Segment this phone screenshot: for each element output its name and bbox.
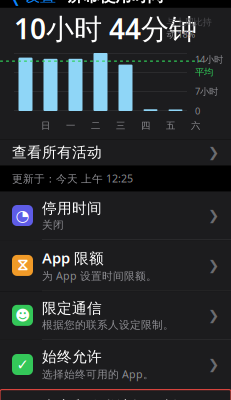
staticText: 查看所有活动 [12, 143, 102, 161]
staticText: 更新于：今天 上午 12:25 [12, 171, 133, 186]
staticText: ❬ [8, 0, 23, 6]
staticText: 选择始终可用的 App。 [42, 367, 154, 381]
staticText: ❯ [208, 145, 219, 160]
staticText: 与上周比持 [166, 16, 211, 28]
staticText: 四 [141, 120, 150, 131]
staticText: App 限额 [42, 248, 104, 268]
staticText: 始终允许 [42, 348, 102, 366]
button[interactable]: ⊘ [0, 390, 231, 400]
staticText: 10小时 44分钟 [14, 10, 197, 47]
staticText: 屏幕使用时间 [67, 0, 163, 6]
staticText: ✓ [16, 356, 28, 373]
button[interactable]: ◔ [0, 191, 231, 240]
staticText: ❯ [208, 208, 219, 223]
button[interactable]: ☻ [0, 291, 231, 340]
staticText: 二 [91, 120, 100, 131]
staticText: 六 [191, 120, 200, 131]
staticText: 五 [166, 120, 175, 131]
button[interactable]: ❬ [0, 0, 56, 10]
staticText: 设置 [24, 0, 56, 6]
staticText: ❯ [208, 357, 219, 372]
staticText: 平均 [195, 66, 213, 78]
staticText: 限定通信 [42, 299, 102, 317]
staticText: ❯ [208, 308, 219, 323]
staticText: 内容和隐私访问限制 [42, 398, 177, 400]
staticText: 一 [66, 120, 75, 131]
staticText: ⧖ [17, 258, 28, 273]
button[interactable]: ⧖ [0, 240, 231, 291]
staticText: ◔ [15, 206, 29, 225]
staticText: 三 [116, 120, 125, 131]
staticText: ❯ [208, 258, 219, 273]
staticText: 关闭 [42, 218, 64, 232]
staticText: 根据您的联系人设定限制。 [42, 318, 174, 331]
staticText: 日 [41, 120, 50, 131]
staticText: 停用时间 [42, 199, 102, 217]
button[interactable]: 查看所有活动 [0, 139, 231, 165]
staticText: 7小时 [195, 85, 218, 97]
staticText: 为 App 设置时间限额。 [42, 269, 157, 283]
staticText: ☻ [15, 307, 30, 324]
button[interactable]: ✓ [0, 340, 231, 390]
staticText: 动 18% [166, 28, 195, 40]
staticText: 14小时 [195, 53, 223, 65]
staticText: 0 [195, 105, 200, 117]
